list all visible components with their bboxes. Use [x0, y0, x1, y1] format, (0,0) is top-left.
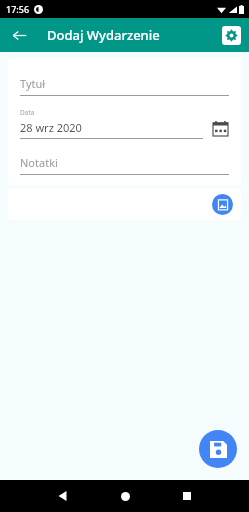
button[interactable]: Data [20, 108, 203, 139]
button[interactable]: Recent apps [174, 483, 200, 509]
button[interactable]: Settings [222, 26, 241, 45]
button[interactable]: Back [7, 23, 31, 47]
staticText: Data [20, 108, 35, 117]
staticText: Notatki [20, 155, 58, 170]
button[interactable]: Pick date [211, 119, 229, 137]
staticText: 17:56 [6, 3, 30, 15]
staticText: Tytuł [20, 76, 46, 91]
staticText: Dodaj Wydarzenie [47, 26, 160, 44]
button[interactable]: Add image [212, 194, 233, 215]
button[interactable]: Back [50, 483, 76, 509]
button[interactable]: Tytuł [20, 76, 229, 96]
button[interactable]: Notatki [20, 155, 229, 175]
staticText: 28 wrz 2020 [20, 120, 82, 135]
button[interactable]: Save [199, 430, 237, 468]
button[interactable]: Home [112, 483, 138, 509]
